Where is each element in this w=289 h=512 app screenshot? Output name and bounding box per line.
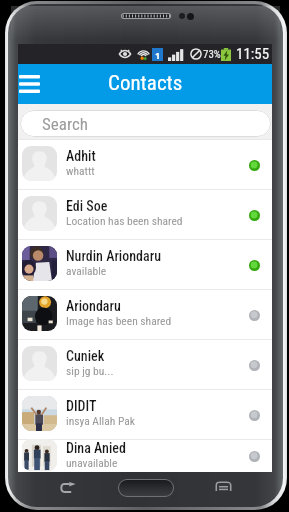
staticText: available xyxy=(66,264,107,277)
staticText: sip jg bu... xyxy=(66,364,114,377)
staticText: 73% xyxy=(203,48,221,61)
staticText: Dina Anied xyxy=(66,440,126,456)
staticText: 1 xyxy=(155,49,161,61)
staticText: whattt xyxy=(66,164,95,177)
staticText: Edi Soe xyxy=(66,198,108,214)
staticText: DIDIT xyxy=(66,398,97,414)
staticText: Adhit xyxy=(66,148,96,164)
button[interactable]: Ariondaru xyxy=(18,290,272,339)
button[interactable]: Open navigation menu xyxy=(18,64,59,104)
staticText: Contacts xyxy=(108,71,183,96)
button[interactable]: DIDIT xyxy=(18,390,272,439)
staticText: Location has been shared xyxy=(66,214,183,227)
staticText: unavailable xyxy=(66,456,118,469)
button[interactable]: Edi Soe xyxy=(18,190,272,239)
staticText: Cuniek xyxy=(66,348,105,364)
staticText: Nurdin Ariondaru xyxy=(66,248,161,264)
staticText: Image has been shared xyxy=(66,314,172,327)
button[interactable]: Adhit xyxy=(18,140,272,189)
button[interactable]: Cuniek xyxy=(18,340,272,389)
staticText: Search xyxy=(42,114,89,134)
staticText: insya Allah Pak xyxy=(66,414,135,427)
staticText: Ariondaru xyxy=(66,298,121,314)
staticText: 11:55 xyxy=(236,45,270,63)
button[interactable]: Nurdin Ariondaru xyxy=(18,240,272,289)
button[interactable]: Dina Anied xyxy=(18,440,272,472)
button[interactable]: Search xyxy=(20,110,271,137)
